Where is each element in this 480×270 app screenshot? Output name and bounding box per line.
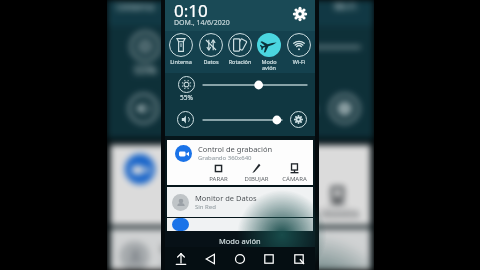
button[interactable]: Linterna — [111, 0, 160, 12]
button[interactable]: Split screen — [286, 248, 312, 270]
button[interactable]: Brightness slider — [175, 35, 360, 60]
button[interactable]: DIBUJAR — [243, 163, 270, 183]
button[interactable]: PARAR — [205, 163, 232, 183]
staticText: 55% — [180, 93, 193, 102]
staticText: Modo avión — [219, 236, 261, 246]
button[interactable]: Sound settings — [290, 111, 307, 128]
button[interactable]: Recents — [256, 248, 282, 270]
button[interactable]: Linterna — [167, 33, 195, 65]
button[interactable]: Settings — [292, 6, 307, 21]
staticText: PARAR — [178, 207, 226, 222]
staticText: Modo avión — [255, 58, 283, 71]
button[interactable]: CÁMARA — [281, 163, 308, 183]
button[interactable]: Control de grabación — [167, 140, 313, 185]
button[interactable]: Wi-Fi — [321, 0, 370, 12]
staticText: PARAR — [205, 175, 232, 183]
button[interactable]: Modo avión — [267, 0, 317, 22]
staticText: 0:10 — [174, 0, 208, 22]
staticText: Wi-Fi — [285, 58, 313, 65]
staticText: Datos — [164, 0, 214, 12]
button[interactable]: DIBUJAR — [246, 186, 294, 222]
button[interactable]: Datos — [197, 33, 225, 65]
staticText: Control de grabación — [166, 152, 299, 170]
button[interactable]: Sound settings — [329, 93, 360, 124]
button[interactable]: CÁMARA — [313, 186, 362, 222]
button[interactable]: Volume slider — [203, 113, 282, 127]
staticText: DIBUJAR — [243, 175, 270, 183]
button[interactable]: Back — [198, 248, 224, 270]
staticText: Modo avión — [267, 0, 317, 22]
button[interactable]: Rotación — [226, 33, 254, 65]
staticText: Grabando 360x640 — [166, 170, 262, 184]
staticText: 55% — [134, 61, 157, 77]
button[interactable]: Wi-Fi — [285, 33, 313, 65]
button[interactable]: Volume slider — [175, 97, 315, 122]
staticText: Monitor de Datos — [195, 193, 257, 203]
button[interactable]: Monitor de Datos — [167, 187, 313, 217]
button[interactable]: PARAR — [178, 186, 226, 222]
staticText: Monitor de Datos — [160, 239, 271, 257]
staticText: Linterna — [167, 58, 195, 65]
button[interactable]: Brightness slider — [203, 78, 307, 92]
button[interactable]: Volume — [177, 111, 194, 128]
staticText: DOM., 14/6/2020 — [174, 18, 230, 28]
staticText: Rotación — [226, 58, 254, 65]
staticText: Wi-Fi — [321, 0, 370, 12]
staticText: Control de grabación — [198, 144, 273, 154]
staticText: Grabando 360x640 — [198, 154, 252, 162]
button[interactable]: Home — [227, 248, 253, 270]
button[interactable]: Brightness — [177, 76, 195, 102]
button[interactable]: Modo avión — [255, 33, 283, 71]
button[interactable]: Volume — [128, 93, 159, 124]
button[interactable]: Datos — [164, 0, 214, 12]
staticText: DIBUJAR — [246, 207, 294, 222]
staticText: Linterna — [111, 0, 160, 12]
staticText: CÁMARA — [281, 175, 308, 183]
button[interactable]: Share — [168, 248, 194, 270]
staticText: Sin Red — [160, 257, 198, 270]
button[interactable]: Monitor de Datos — [111, 229, 370, 270]
staticText: CÁMARA — [313, 207, 362, 222]
button[interactable]: Control de grabación — [111, 145, 370, 225]
button[interactable]: Brightness — [128, 31, 160, 77]
staticText: Datos — [197, 58, 225, 65]
staticText: Sin Red — [195, 203, 216, 211]
